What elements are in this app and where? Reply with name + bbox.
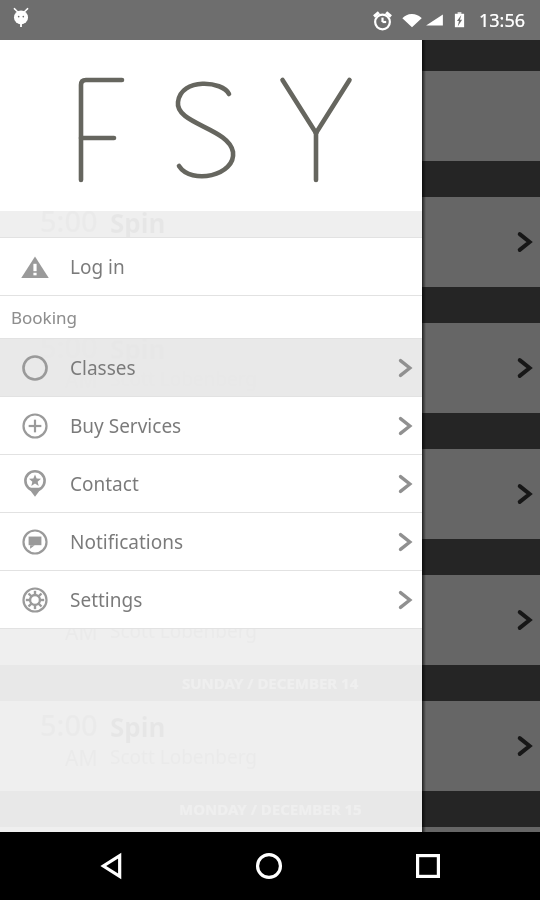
staticText: Classes [70,355,136,381]
button[interactable]: Notifications [0,513,422,570]
staticText: AM [65,618,98,647]
staticText: Spin [110,79,166,114]
button[interactable]: 5:00 [0,449,540,539]
staticText: Spin [110,826,166,861]
staticText: 5:00 [40,327,98,366]
staticText: Spin [110,457,166,492]
staticText: Scott Lobenberg [110,618,258,644]
button[interactable]: 5:00 [0,701,540,791]
staticText: 5:00 [40,453,98,492]
button[interactable]: 5:00 [0,575,540,665]
staticText: Scott Lobenberg [110,114,258,140]
staticText: Contact [70,471,139,497]
staticText: 13:56 [479,8,526,33]
button[interactable]: Back [82,836,142,896]
staticText: Booking [11,306,78,329]
staticText: Scott Lobenberg [110,861,258,887]
staticText: SATURDAY / DECEMBER 13 [174,547,366,567]
staticText: Spin [110,583,166,618]
staticText: AM [65,240,98,269]
button[interactable]: Home [239,836,299,896]
staticText: AM [65,114,98,143]
button[interactable]: Classes [0,339,422,396]
staticText: 5:00 [40,75,98,114]
staticText: 5:00 [40,823,98,862]
staticText: 5:00 [40,201,98,240]
staticText: Scott Lobenberg [110,492,258,518]
staticText: Scott Lobenberg [110,240,258,266]
staticText: WEDNESDAY / DECEMBER 10 [166,169,374,189]
staticText: Spin [110,331,166,366]
staticText: Scott Lobenberg [110,366,258,392]
staticText: 5:00 [40,579,98,618]
button[interactable]: Contact [0,455,422,512]
button[interactable]: Log in [0,238,422,295]
staticText: Settings [70,587,143,613]
button[interactable]: 5:00 [0,323,540,413]
button[interactable]: Buy Services [0,397,422,454]
staticText: Spin [110,205,166,240]
button[interactable]: 5:00 [0,197,540,287]
button[interactable]: 5:00 [0,71,540,161]
button[interactable]: 5:00 [0,827,540,900]
staticText: Log in [70,254,125,280]
staticText: Buy Services [70,413,182,439]
staticText: THURSDAY / DECEMBER 11 [173,295,367,315]
staticText: AM [65,366,98,395]
staticText: AM [65,492,98,521]
staticText: Spin [110,709,166,744]
button[interactable]: Recents [398,836,458,896]
staticText: Notifications [70,529,184,555]
button[interactable]: Settings [0,571,422,628]
